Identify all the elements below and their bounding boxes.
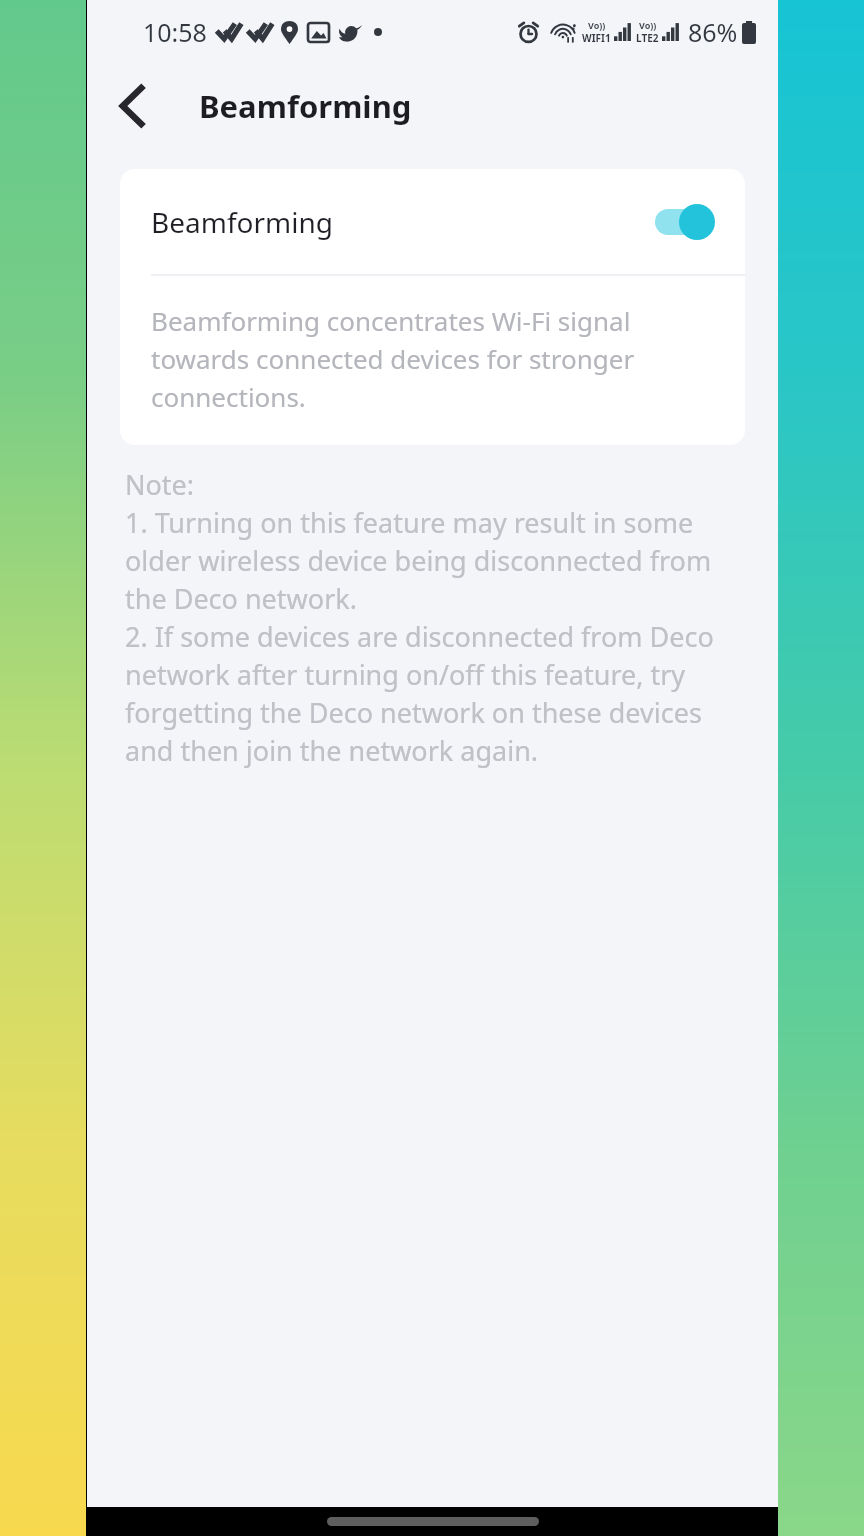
button[interactable]: Beamforming (120, 169, 745, 274)
button[interactable] (655, 202, 717, 242)
staticText: WIFI1 (582, 31, 611, 45)
staticText: Beamforming concentrates Wi-Fi signal to… (151, 303, 709, 414)
staticText: LTE2 (636, 31, 659, 45)
staticText: Beamforming (199, 85, 412, 127)
button[interactable]: Back (101, 75, 163, 137)
staticText: 86% (688, 15, 738, 49)
staticText: Vo)) (588, 19, 606, 31)
staticText: Beamforming (151, 203, 333, 241)
staticText: 10:58 (143, 15, 207, 49)
staticText: Vo)) (639, 19, 657, 31)
staticText: Note: 1. Turning on this feature may res… (125, 466, 740, 769)
